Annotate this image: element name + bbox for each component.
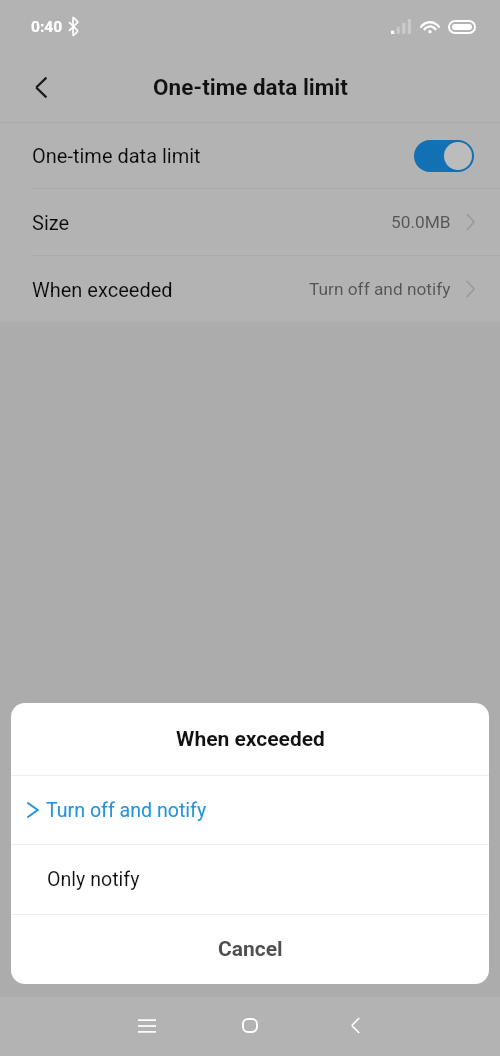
button[interactable]: Back: [20, 66, 62, 108]
staticText: 50.0MB: [391, 212, 451, 232]
button[interactable]: Cancel: [11, 915, 489, 984]
button[interactable]: Back: [325, 996, 385, 1055]
button[interactable]: When exceeded: [0, 256, 500, 322]
staticText: One-time data limit: [153, 74, 348, 100]
button[interactable]: Size: [0, 189, 500, 255]
button[interactable]: One-time data limit toggle: [414, 140, 474, 172]
staticText: Turn off and notify: [309, 279, 451, 299]
staticText: 0:40: [31, 18, 63, 36]
staticText: When exceeded: [32, 278, 173, 301]
staticText: Cancel: [218, 937, 283, 962]
staticText: When exceeded: [176, 727, 325, 752]
button[interactable]: Turn off and notify: [11, 776, 489, 844]
button[interactable]: Recent apps: [117, 996, 177, 1055]
button[interactable]: Home: [220, 996, 280, 1055]
button[interactable]: One-time data limit: [0, 123, 500, 188]
staticText: Size: [32, 211, 70, 234]
staticText: One-time data limit: [32, 144, 201, 167]
staticText: Only notify: [47, 868, 140, 891]
button[interactable]: Only notify: [11, 845, 489, 914]
staticText: Turn off and notify: [46, 799, 207, 822]
